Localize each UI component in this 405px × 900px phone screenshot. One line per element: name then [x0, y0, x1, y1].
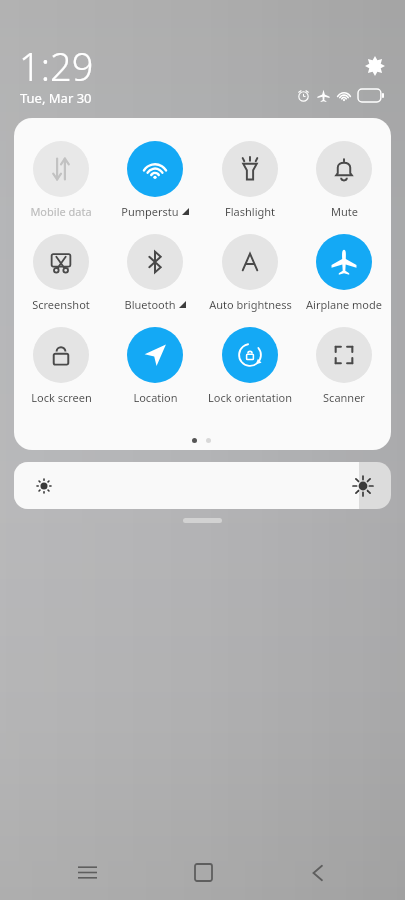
staticText: Flashlight [225, 204, 275, 219]
button[interactable]: Airplane mode [297, 234, 391, 312]
button[interactable]: Lock orientation [203, 327, 297, 405]
staticText: Airplane mode [306, 297, 382, 312]
staticText: Screenshot [32, 297, 90, 312]
staticText: Lock screen [31, 390, 92, 405]
staticText: 1:29 [19, 40, 94, 92]
button[interactable]: Screenshot [14, 234, 108, 312]
staticText: Mobile data [30, 204, 92, 219]
staticText: Pumperstu [121, 204, 179, 219]
staticText: Auto brightness [209, 297, 292, 312]
staticText: Tue, Mar 30 [20, 89, 92, 107]
button[interactable]: Recents [59, 845, 115, 900]
staticText: Location [133, 390, 178, 405]
button[interactable]: Flashlight [203, 141, 297, 219]
button[interactable]: Home [175, 845, 231, 900]
button[interactable]: Auto brightness [203, 234, 297, 312]
button[interactable]: Mute [297, 141, 391, 219]
staticText: Bluetooth [124, 297, 176, 312]
button[interactable]: Lock screen [14, 327, 108, 405]
button[interactable]: Mobile data [14, 141, 108, 219]
button[interactable]: Pumperstu [108, 141, 202, 219]
button[interactable]: Scanner [297, 327, 391, 405]
staticText: Mute [331, 204, 358, 219]
button[interactable]: Brightness [14, 462, 391, 509]
button[interactable]: Settings [362, 53, 388, 79]
button[interactable]: Location [108, 327, 202, 405]
button[interactable]: Back [290, 845, 346, 900]
staticText: Scanner [323, 390, 365, 405]
staticText: Lock orientation [208, 390, 292, 405]
button[interactable]: Bluetooth [108, 234, 202, 312]
